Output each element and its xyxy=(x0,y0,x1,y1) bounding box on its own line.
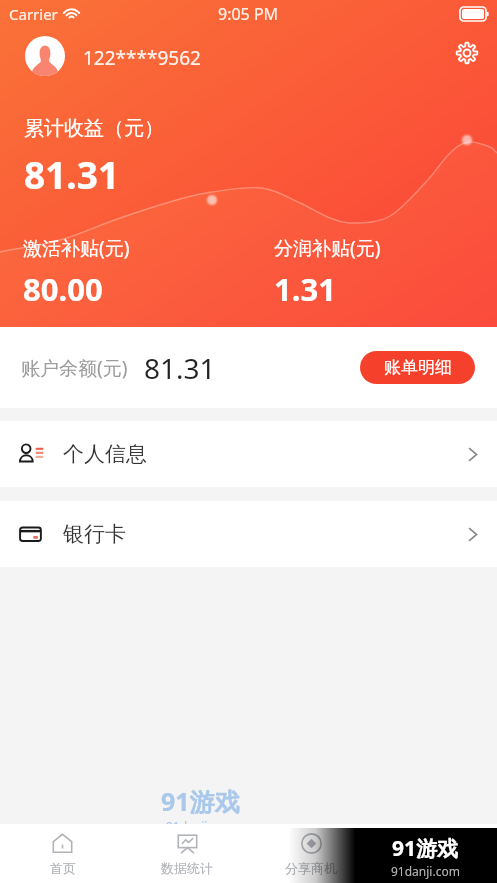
staticText: 91游戏 xyxy=(392,834,459,863)
button[interactable]: 数据统计 xyxy=(125,824,249,883)
staticText: 账单明细 xyxy=(384,357,452,378)
button[interactable]: 个人信息 xyxy=(0,421,497,487)
staticText: 9:05 PM xyxy=(218,3,279,25)
staticText: 累计收益（元） xyxy=(24,116,164,141)
button[interactable]: 分享商机 xyxy=(249,824,373,883)
staticText: 80.00 xyxy=(23,268,103,310)
button[interactable]: 首页 xyxy=(0,824,125,883)
staticText: 首页 xyxy=(50,860,76,876)
button[interactable]: Settings xyxy=(449,35,485,71)
staticText: Carrier xyxy=(9,4,58,24)
button[interactable]: 银行卡 xyxy=(0,501,497,567)
staticText: 激活补贴(元) xyxy=(23,235,130,261)
staticText: 分享商机 xyxy=(285,860,337,876)
staticText: 91游戏 xyxy=(161,784,240,818)
staticText: 91danji.com xyxy=(166,818,235,824)
staticText: 分润补贴(元) xyxy=(274,235,381,261)
staticText: 122****9562 xyxy=(83,45,201,71)
staticText: 个人信息 xyxy=(63,441,147,467)
staticText: 数据统计 xyxy=(161,860,213,876)
staticText: 81.31 xyxy=(24,149,120,199)
staticText: 账户余额(元) xyxy=(21,355,128,381)
staticText: 1.31 xyxy=(274,268,336,310)
button[interactable]: 账单明细 xyxy=(360,351,475,384)
button[interactable]: 我的 xyxy=(373,824,497,883)
staticText: 91danji.com xyxy=(391,863,460,879)
staticText: 银行卡 xyxy=(63,521,126,547)
staticText: 81.31 xyxy=(144,349,216,387)
staticText: 我的 xyxy=(422,860,448,876)
